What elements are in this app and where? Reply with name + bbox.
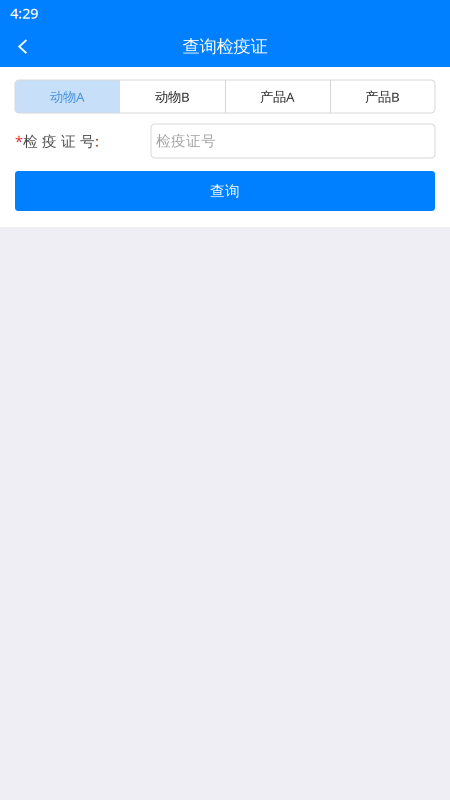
button[interactable]: 检疫证号 <box>151 124 435 158</box>
staticText: 检疫证号 <box>156 132 216 150</box>
staticText: 产品B <box>365 88 400 105</box>
button[interactable]: 动物A <box>15 80 120 113</box>
staticText: 产品A <box>260 88 295 105</box>
staticText: 动物B <box>155 88 190 105</box>
staticText: 查询 <box>210 182 240 200</box>
button[interactable]: 产品B <box>330 80 435 113</box>
staticText: * <box>15 131 23 151</box>
button[interactable]: 查询 <box>15 171 435 211</box>
staticText: 4:29 <box>10 3 38 23</box>
staticText: 动物A <box>50 88 85 105</box>
staticText: 查询检疫证 <box>182 36 267 57</box>
button[interactable]: 动物B <box>120 80 225 113</box>
staticText: 检 疫 证 号: <box>23 131 99 151</box>
button[interactable]: Back <box>0 27 45 65</box>
button[interactable]: 产品A <box>225 80 330 113</box>
